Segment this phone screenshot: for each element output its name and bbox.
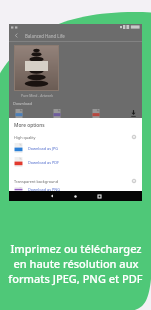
button[interactable]: Recent apps — [93, 191, 106, 201]
staticText: High quality — [14, 135, 36, 140]
button[interactable]: Poster preview — [15, 46, 58, 90]
button[interactable]: More download options — [128, 108, 138, 118]
staticText: Imprimez ou téléchargez — [10, 241, 142, 256]
button[interactable]: Info about High quality — [131, 134, 137, 140]
button[interactable]: Back — [45, 191, 58, 201]
button[interactable]: Download as JPG — [14, 143, 137, 153]
button[interactable]: Download JPG — [13, 108, 24, 118]
button[interactable]: Info about Transparent background — [131, 178, 137, 184]
staticText: formats JPEG, PNG et PDF — [8, 271, 143, 286]
button[interactable]: Download as PDF — [14, 157, 137, 167]
button[interactable]: Download PDF — [90, 108, 101, 118]
button[interactable]: Download PNG — [51, 108, 62, 118]
staticText: en haute résolution aux — [13, 256, 139, 271]
staticText: More options — [14, 122, 45, 129]
staticText: Download as PDF — [28, 160, 60, 165]
button[interactable]: Home — [69, 191, 82, 201]
staticText: Transparent background — [14, 179, 58, 184]
staticText: Balanced Hand Life — [25, 33, 65, 39]
staticText: Pure Mind - Artwork — [21, 93, 53, 98]
button[interactable]: Download as PNG — [14, 187, 137, 191]
staticText: Download as PNG — [28, 187, 60, 191]
button[interactable]: Back — [12, 31, 21, 40]
staticText: Download as JPG — [28, 146, 59, 151]
staticText: Download — [13, 101, 33, 106]
